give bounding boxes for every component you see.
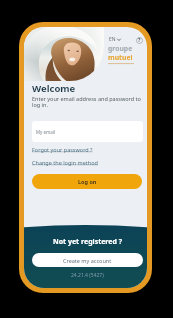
button[interactable]: Create my account — [32, 253, 143, 267]
button[interactable]: EN — [109, 36, 121, 43]
button[interactable]: Log on — [32, 174, 142, 189]
staticText: Log on — [78, 178, 97, 185]
button[interactable]: Help — [136, 37, 143, 44]
button[interactable]: Change the login method — [32, 159, 98, 166]
staticText: 24.21.4 (5427) — [71, 272, 104, 279]
button[interactable]: My email — [32, 121, 143, 142]
staticText: My email — [36, 129, 56, 135]
staticText: Create my account — [63, 257, 112, 264]
staticText: Welcome — [32, 82, 76, 95]
staticText: Enter your email address and password to… — [32, 95, 144, 109]
staticText: ? — [138, 37, 141, 44]
staticText: mutuel — [108, 53, 133, 62]
button[interactable]: Forgot your password ? — [32, 146, 93, 153]
staticText: EN — [109, 36, 116, 43]
staticText: groupe — [108, 44, 133, 53]
staticText: Not yet registered ? — [53, 237, 123, 247]
